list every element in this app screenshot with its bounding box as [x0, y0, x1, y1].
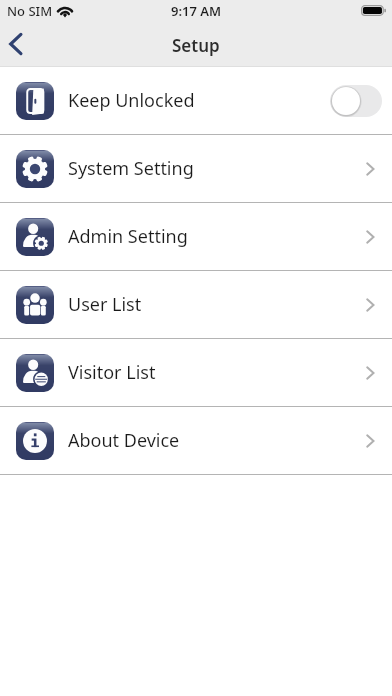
staticText: Admin Setting	[68, 224, 188, 249]
button[interactable]: Visitor List	[0, 339, 392, 406]
staticText: Visitor List	[68, 360, 156, 385]
staticText: Setup	[172, 34, 220, 57]
button[interactable]: Keep Unlocked	[0, 67, 392, 134]
staticText: Keep Unlocked	[68, 88, 195, 113]
button[interactable]: Admin Setting	[0, 203, 392, 270]
staticText: About Device	[68, 428, 180, 453]
staticText: 9:17 AM	[171, 2, 222, 20]
button[interactable]: Keep Unlocked toggle	[330, 85, 382, 117]
button[interactable]: System Setting	[0, 135, 392, 202]
button[interactable]: About Device	[0, 407, 392, 474]
button[interactable]: User List	[0, 271, 392, 338]
button[interactable]: Back	[0, 24, 44, 68]
staticText: System Setting	[68, 156, 194, 181]
staticText: User List	[68, 292, 142, 317]
staticText: No SIM	[7, 2, 53, 20]
